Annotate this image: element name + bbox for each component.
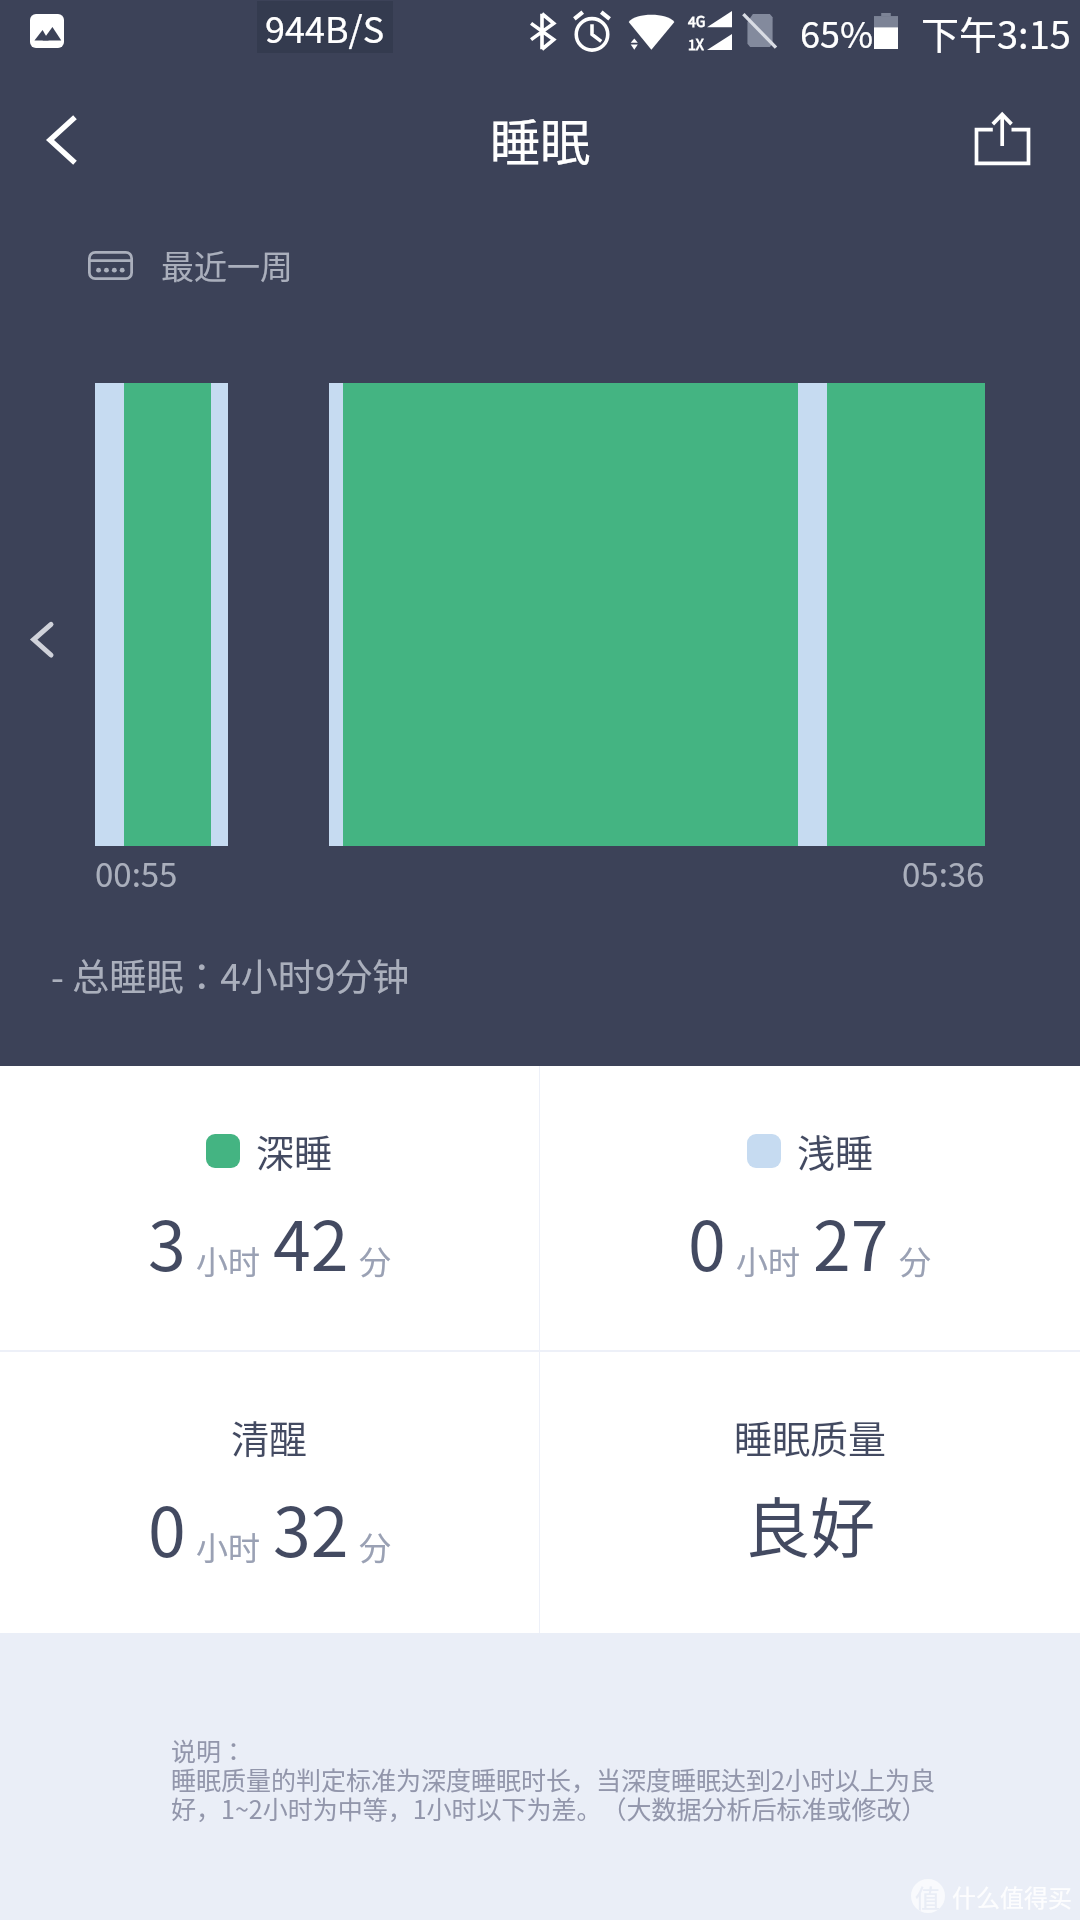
staticText: 分: [359, 1523, 392, 1569]
staticText: 42: [273, 1192, 349, 1290]
staticText: 944B/S: [265, 1, 385, 53]
staticText: 睡眠质量: [734, 1409, 887, 1464]
staticText: 深睡: [256, 1123, 333, 1178]
staticText: 说明： 睡眠质量的判定标准为深度睡眠时长，当深度睡眠达到2小时以上为良 好，1~…: [171, 1732, 935, 1826]
staticText: 良好: [745, 1477, 876, 1571]
staticText: 小时: [736, 1237, 801, 1283]
staticText: 05:36: [902, 849, 985, 897]
staticText: 小时: [196, 1237, 261, 1283]
staticText: 0: [688, 1192, 726, 1290]
staticText: 00:55: [95, 849, 178, 897]
staticText: 4G: [688, 11, 706, 31]
staticText: 睡眠: [490, 103, 590, 175]
staticText: 32: [273, 1478, 349, 1576]
staticText: 3: [148, 1192, 186, 1290]
staticText: 清醒: [231, 1409, 308, 1464]
staticText: 值: [915, 1879, 941, 1913]
staticText: 27: [813, 1192, 889, 1290]
staticText: 1X: [688, 34, 704, 54]
staticText: 分: [899, 1237, 932, 1283]
staticText: 0: [148, 1478, 186, 1576]
staticText: 分: [359, 1237, 392, 1283]
button[interactable]: 睡眠质量: [540, 1352, 1080, 1633]
staticText: 浅睡: [797, 1123, 874, 1178]
button[interactable]: 浅睡: [540, 1066, 1080, 1350]
button[interactable]: Share: [960, 78, 1044, 162]
staticText: 小时: [196, 1523, 261, 1569]
staticText: 下午3:15: [921, 5, 1071, 60]
button[interactable]: 深睡: [0, 1066, 539, 1350]
staticText: - 总睡眠：4小时9分钟: [51, 948, 410, 1002]
staticText: 什么值得买: [952, 1879, 1072, 1914]
staticText: 65%: [800, 6, 874, 58]
button[interactable]: Previous week: [0, 600, 84, 680]
button[interactable]: Back: [20, 78, 104, 162]
staticText: 最近一周: [161, 241, 293, 289]
button[interactable]: 清醒: [0, 1352, 539, 1633]
button[interactable]: 最近一周: [88, 229, 293, 301]
